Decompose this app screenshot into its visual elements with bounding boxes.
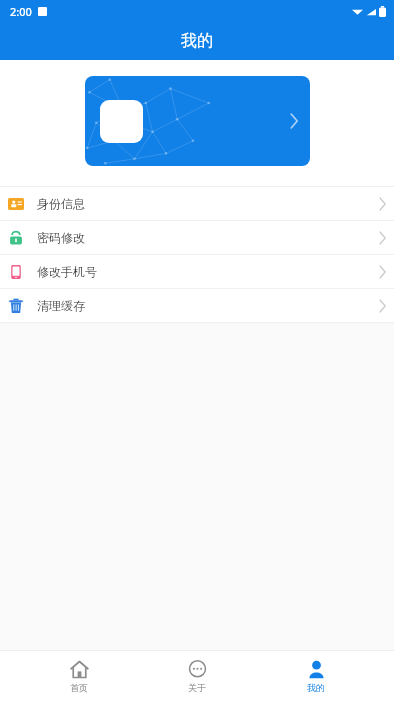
staticText: 修改手机号: [37, 264, 97, 279]
button[interactable]: 我的: [276, 651, 356, 702]
staticText: 我的: [181, 31, 213, 51]
staticText: 清理缓存: [37, 298, 85, 313]
button[interactable]: 清理缓存: [0, 289, 394, 322]
staticText: 关于: [188, 682, 206, 693]
staticText: 密码修改: [37, 230, 85, 245]
staticText: 身份信息: [37, 196, 85, 211]
button[interactable]: 身份信息: [0, 187, 394, 220]
staticText: 2:00: [10, 4, 32, 19]
staticText: 我的: [307, 682, 325, 693]
button[interactable]: Profile: [85, 76, 310, 166]
button[interactable]: 关于: [157, 651, 237, 702]
button[interactable]: 首页: [39, 651, 119, 702]
button[interactable]: 密码修改: [0, 221, 394, 254]
staticText: 首页: [70, 682, 88, 693]
button[interactable]: 修改手机号: [0, 255, 394, 288]
